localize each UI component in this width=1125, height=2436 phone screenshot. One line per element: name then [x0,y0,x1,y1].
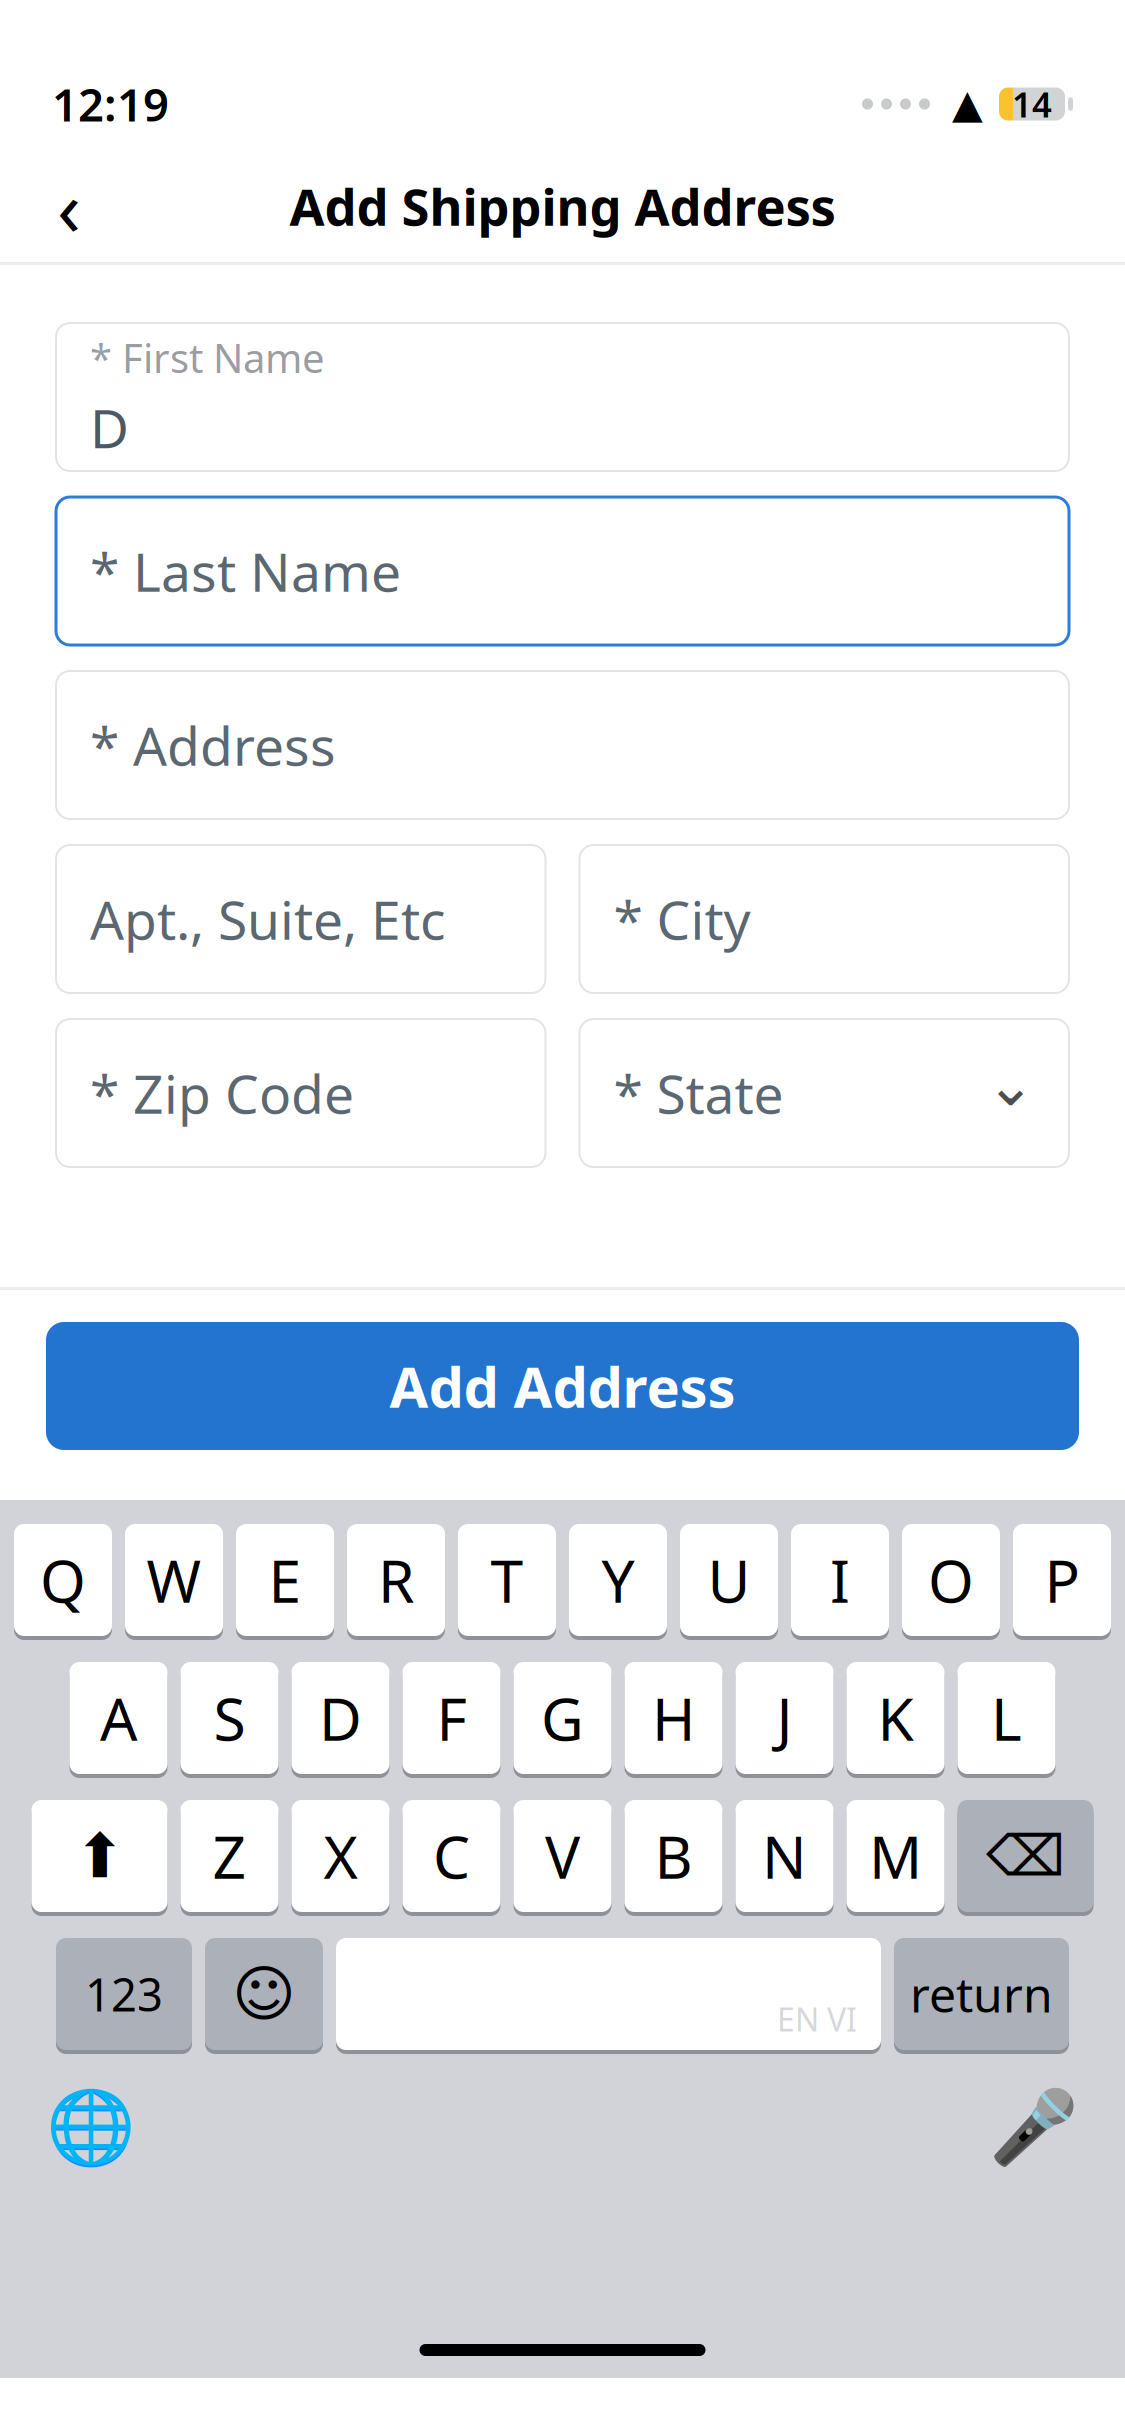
staticText: O [928,1541,974,1619]
button[interactable]: Apt., Suite, Etc [56,845,545,993]
staticText: * First Name [90,331,325,384]
staticText: ⬆ [74,1821,125,1891]
staticText: P [1044,1541,1079,1619]
button[interactable]: Z [180,1800,278,1916]
button[interactable]: O [902,1524,1000,1640]
button[interactable]: 123 [56,1938,192,2054]
staticText: * State [613,1058,783,1128]
staticText: N [762,1817,807,1895]
staticText: U [707,1541,750,1619]
button[interactable]: T [458,1524,556,1640]
button[interactable]: W [125,1524,223,1640]
staticText: M [869,1817,922,1895]
staticText: D [90,392,129,463]
staticText: S [213,1679,245,1757]
button[interactable]: * First Name [56,323,1069,471]
button[interactable]: Dictation [987,2080,1081,2174]
button[interactable]: * State [579,1019,1069,1167]
staticText: T [490,1541,523,1619]
staticText: ⌫ [986,1824,1065,1888]
staticText: ▲ [952,81,983,127]
button[interactable]: Next keyboard [44,2080,138,2174]
button[interactable]: ☺ [205,1938,323,2054]
staticText: Q [40,1541,86,1619]
button[interactable]: S [180,1662,278,1778]
button[interactable]: F [402,1662,500,1778]
button[interactable]: J [735,1662,833,1778]
button[interactable]: U [680,1524,778,1640]
staticText: K [877,1679,913,1757]
button[interactable]: E [236,1524,334,1640]
staticText: 12:19 [52,74,169,134]
button[interactable]: * Address [56,671,1069,819]
button[interactable]: A [69,1662,167,1778]
staticText: V [545,1817,580,1895]
staticText: X [323,1817,357,1895]
button[interactable]: * City [579,845,1069,993]
button[interactable]: K [846,1662,944,1778]
button[interactable]: M [846,1800,944,1916]
staticText: * Address [90,710,336,780]
staticText: Add Address [389,1349,735,1423]
button[interactable]: X [291,1800,389,1916]
staticText: * City [613,884,750,954]
staticText: ☺ [232,1959,296,2029]
staticText: 🌐 [46,2086,136,2168]
button[interactable]: H [624,1662,722,1778]
button[interactable]: R [347,1524,445,1640]
button[interactable]: ⬆ [31,1800,167,1916]
button[interactable]: C [402,1800,500,1916]
button[interactable]: B [624,1800,722,1916]
button[interactable]: P [1013,1524,1111,1640]
button[interactable]: N [735,1800,833,1916]
staticText: 🎤 [989,2086,1079,2168]
staticText: D [319,1679,362,1757]
staticText: J [776,1679,792,1757]
staticText: Y [601,1541,634,1619]
staticText: Apt., Suite, Etc [90,884,446,954]
button[interactable]: EN VI [336,1938,881,2054]
button[interactable]: G [513,1662,611,1778]
button[interactable]: Add Address [46,1322,1079,1450]
staticText: 14 [1012,81,1052,127]
button[interactable]: Y [569,1524,667,1640]
button[interactable]: V [513,1800,611,1916]
staticText: EN VI [777,1998,857,2040]
staticText: G [541,1679,584,1757]
staticText: Z [212,1817,246,1895]
staticText: E [268,1541,301,1619]
staticText: ‹ [57,155,81,257]
button[interactable]: D [291,1662,389,1778]
staticText: W [146,1541,201,1619]
staticText: * Last Name [90,536,401,606]
staticText: * Zip Code [90,1058,354,1128]
staticText: A [100,1679,137,1757]
staticText: H [652,1679,695,1757]
button[interactable]: ⌫ [957,1800,1093,1916]
button[interactable]: * Last Name [56,497,1069,645]
staticText: Add Shipping Address [289,172,835,240]
staticText: R [378,1541,414,1619]
staticText: ⌄ [986,1052,1035,1118]
button[interactable]: Back [26,163,112,249]
button[interactable]: Q [14,1524,112,1640]
button[interactable]: return [894,1938,1069,2054]
staticText: F [436,1679,466,1757]
button[interactable]: * Zip Code [56,1019,545,1167]
button[interactable]: L [957,1662,1055,1778]
staticText: C [433,1817,470,1895]
button[interactable]: I [791,1524,889,1640]
staticText: L [991,1679,1022,1757]
staticText: 123 [85,1964,163,2024]
staticText: I [830,1541,850,1619]
staticText: B [654,1817,692,1895]
staticText: return [910,1962,1053,2026]
